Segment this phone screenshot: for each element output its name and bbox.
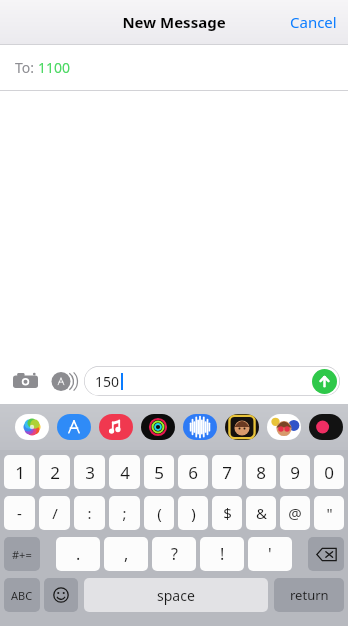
button[interactable]: #+=: [4, 537, 40, 571]
button[interactable]: Voice Memos: [181, 411, 219, 443]
staticText: :: [87, 503, 92, 523]
button[interactable]: .: [56, 537, 100, 571]
button[interactable]: 3: [74, 455, 105, 489]
button[interactable]: :: [74, 496, 105, 530]
staticText: 2: [50, 461, 60, 484]
button[interactable]: 5: [144, 455, 174, 489]
staticText: $: [223, 503, 232, 523]
staticText: New Message: [122, 12, 226, 32]
staticText: ): [191, 503, 196, 523]
button[interactable]: !: [200, 537, 244, 571]
staticText: 150: [95, 372, 120, 391]
button[interactable]: 9: [280, 455, 310, 489]
staticText: 3: [85, 461, 95, 484]
button[interactable]: 8: [246, 455, 276, 489]
button[interactable]: -: [4, 496, 35, 530]
button[interactable]: Camera: [9, 365, 41, 397]
button[interactable]: More apps: [307, 411, 345, 443]
button[interactable]: Music: [97, 411, 135, 443]
staticText: 9: [290, 461, 300, 484]
button[interactable]: 6: [178, 455, 208, 489]
button[interactable]: Send: [312, 369, 337, 394]
button[interactable]: Cancel: [279, 1, 348, 43]
button[interactable]: ): [178, 496, 208, 530]
staticText: ": [326, 503, 333, 523]
staticText: 7: [222, 461, 232, 484]
staticText: ?: [171, 543, 178, 565]
button[interactable]: Memoji 2: [265, 411, 303, 443]
staticText: 4: [120, 461, 130, 484]
button[interactable]: App Store: [55, 411, 93, 443]
button[interactable]: Emoji keyboard: [44, 578, 78, 612]
staticText: ;: [122, 503, 127, 523]
staticText: Cancel: [290, 12, 337, 32]
button[interactable]: ': [248, 537, 292, 571]
button[interactable]: Memoji: [223, 411, 261, 443]
staticText: space: [157, 586, 195, 605]
button[interactable]: 4: [109, 455, 140, 489]
staticText: 6: [188, 461, 198, 484]
button[interactable]: return: [274, 578, 344, 612]
button[interactable]: ?: [152, 537, 196, 571]
staticText: ,: [124, 543, 129, 565]
staticText: 0: [324, 461, 334, 484]
button[interactable]: @: [280, 496, 310, 530]
button[interactable]: Fitness: [139, 411, 177, 443]
button[interactable]: ,: [104, 537, 148, 571]
staticText: To:: [15, 58, 38, 77]
staticText: 8: [256, 461, 266, 484]
staticText: return: [290, 586, 329, 604]
staticText: .: [76, 543, 81, 565]
button[interactable]: (: [144, 496, 174, 530]
button[interactable]: ": [314, 496, 344, 530]
button[interactable]: Backspace: [308, 537, 344, 571]
staticText: @: [288, 503, 302, 523]
button[interactable]: 150: [84, 366, 340, 396]
staticText: /: [52, 503, 58, 523]
button[interactable]: space: [84, 578, 268, 612]
button[interactable]: &: [246, 496, 276, 530]
staticText: #+=: [12, 547, 32, 562]
staticText: &: [256, 503, 267, 523]
button[interactable]: To:: [0, 45, 348, 90]
button[interactable]: 7: [212, 455, 242, 489]
button[interactable]: $: [212, 496, 242, 530]
button[interactable]: ;: [109, 496, 140, 530]
button[interactable]: ABC: [4, 578, 40, 612]
staticText: 1100: [38, 58, 71, 77]
staticText: 5: [154, 461, 164, 484]
staticText: 1: [15, 461, 25, 484]
button[interactable]: /: [39, 496, 70, 530]
button[interactable]: Photos: [13, 411, 51, 443]
button[interactable]: 0: [314, 455, 344, 489]
staticText: ABC: [11, 588, 33, 603]
button[interactable]: 2: [39, 455, 70, 489]
button[interactable]: App Store: [47, 365, 79, 397]
staticText: -: [17, 503, 22, 523]
staticText: ': [268, 543, 272, 565]
staticText: !: [220, 543, 225, 565]
button[interactable]: 1: [4, 455, 35, 489]
staticText: (: [157, 503, 162, 523]
